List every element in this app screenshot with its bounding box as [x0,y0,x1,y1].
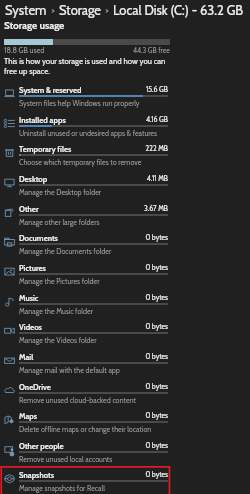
other: mail [4,355,15,366]
button[interactable] [0,84,168,114]
staticText: Temporary files [19,144,72,153]
staticText: Manage other large folders [19,218,100,227]
staticText: Manage the Music folder [19,307,93,316]
staticText: This is how your storage is used and how… [4,56,168,76]
button[interactable] [0,321,168,351]
staticText: 0 bytes [19,441,168,450]
staticText: Manage the Desktop folder [19,188,102,197]
staticText: Other people [19,441,64,450]
button[interactable] [0,114,168,144]
other: other [4,207,15,218]
staticText: Documents [19,233,58,242]
staticText: 0 bytes [19,382,168,391]
button[interactable] [0,143,168,173]
other: video [4,325,15,336]
staticText: 4.11 MB [19,174,168,183]
button[interactable] [0,440,168,470]
staticText: Manage the Pictures folder [19,277,100,286]
staticText: 0 bytes [19,352,168,361]
button[interactable] [0,469,168,494]
staticText: Storage usage [4,19,65,31]
button[interactable]: System [3,3,49,19]
staticText: 3.67 MB [19,204,168,213]
staticText: Manage the Videos folder [19,336,97,345]
other: music [4,296,15,307]
button[interactable] [0,292,168,322]
staticText: System files help Windows run properly [19,99,140,108]
button[interactable] [0,232,168,262]
staticText: 0 bytes [19,470,168,479]
staticText: Choose which temporary files to remove [19,158,142,167]
staticText: 4.16 GB [19,115,168,124]
staticText: 0 bytes [19,293,168,302]
staticText: Remove unused cloud-backed content [19,396,136,405]
other: picture [4,266,15,277]
staticText: OneDrive [19,382,51,391]
staticText: Mail [19,352,34,361]
button[interactable]: Local Disk (C:) - 63.2 GB [111,3,246,19]
button[interactable] [0,381,168,411]
staticText: 44.3 GB free [133,46,170,55]
staticText: Uninstall unused or undesired apps & fea… [19,129,158,138]
staticText: Manage mail with the default app [19,366,120,375]
staticText: 0 bytes [19,233,168,242]
staticText: 222 MB [19,144,168,153]
other: monitor [4,88,15,99]
other: snap [4,473,15,484]
other: display [4,177,15,188]
staticText: Remove unused local accounts [19,455,113,464]
staticText: Snapshots [19,470,55,479]
staticText: 0 bytes [19,411,168,420]
staticText: Desktop [19,174,48,183]
staticText: Pictures [19,263,46,272]
staticText: Installed apps [19,115,66,124]
staticText: Manage the Documents folder [19,247,112,256]
staticText: 18.8 GB used [4,46,45,55]
other: folder [4,236,15,247]
other: list [4,118,15,129]
button[interactable] [0,203,168,233]
button[interactable] [0,262,168,292]
button[interactable] [0,410,168,440]
staticText: 0 bytes [19,322,168,331]
other: people [4,444,15,455]
staticText: Manage snapshots for Recall [19,484,105,493]
button[interactable]: Storage [57,3,103,19]
staticText: System & reserved [19,85,82,94]
other: trash [4,147,15,158]
staticText: Other [19,204,39,213]
staticText: Maps [19,411,38,420]
staticText: Music [19,293,39,302]
other: maps [4,414,15,425]
button[interactable] [0,351,168,381]
other: cloud [4,385,15,396]
button[interactable] [0,173,168,203]
staticText: Videos [19,322,42,331]
staticText: 15.6 GB [19,85,168,94]
staticText: Delete offline maps or change their loca… [19,425,152,434]
staticText: 0 bytes [19,263,168,272]
